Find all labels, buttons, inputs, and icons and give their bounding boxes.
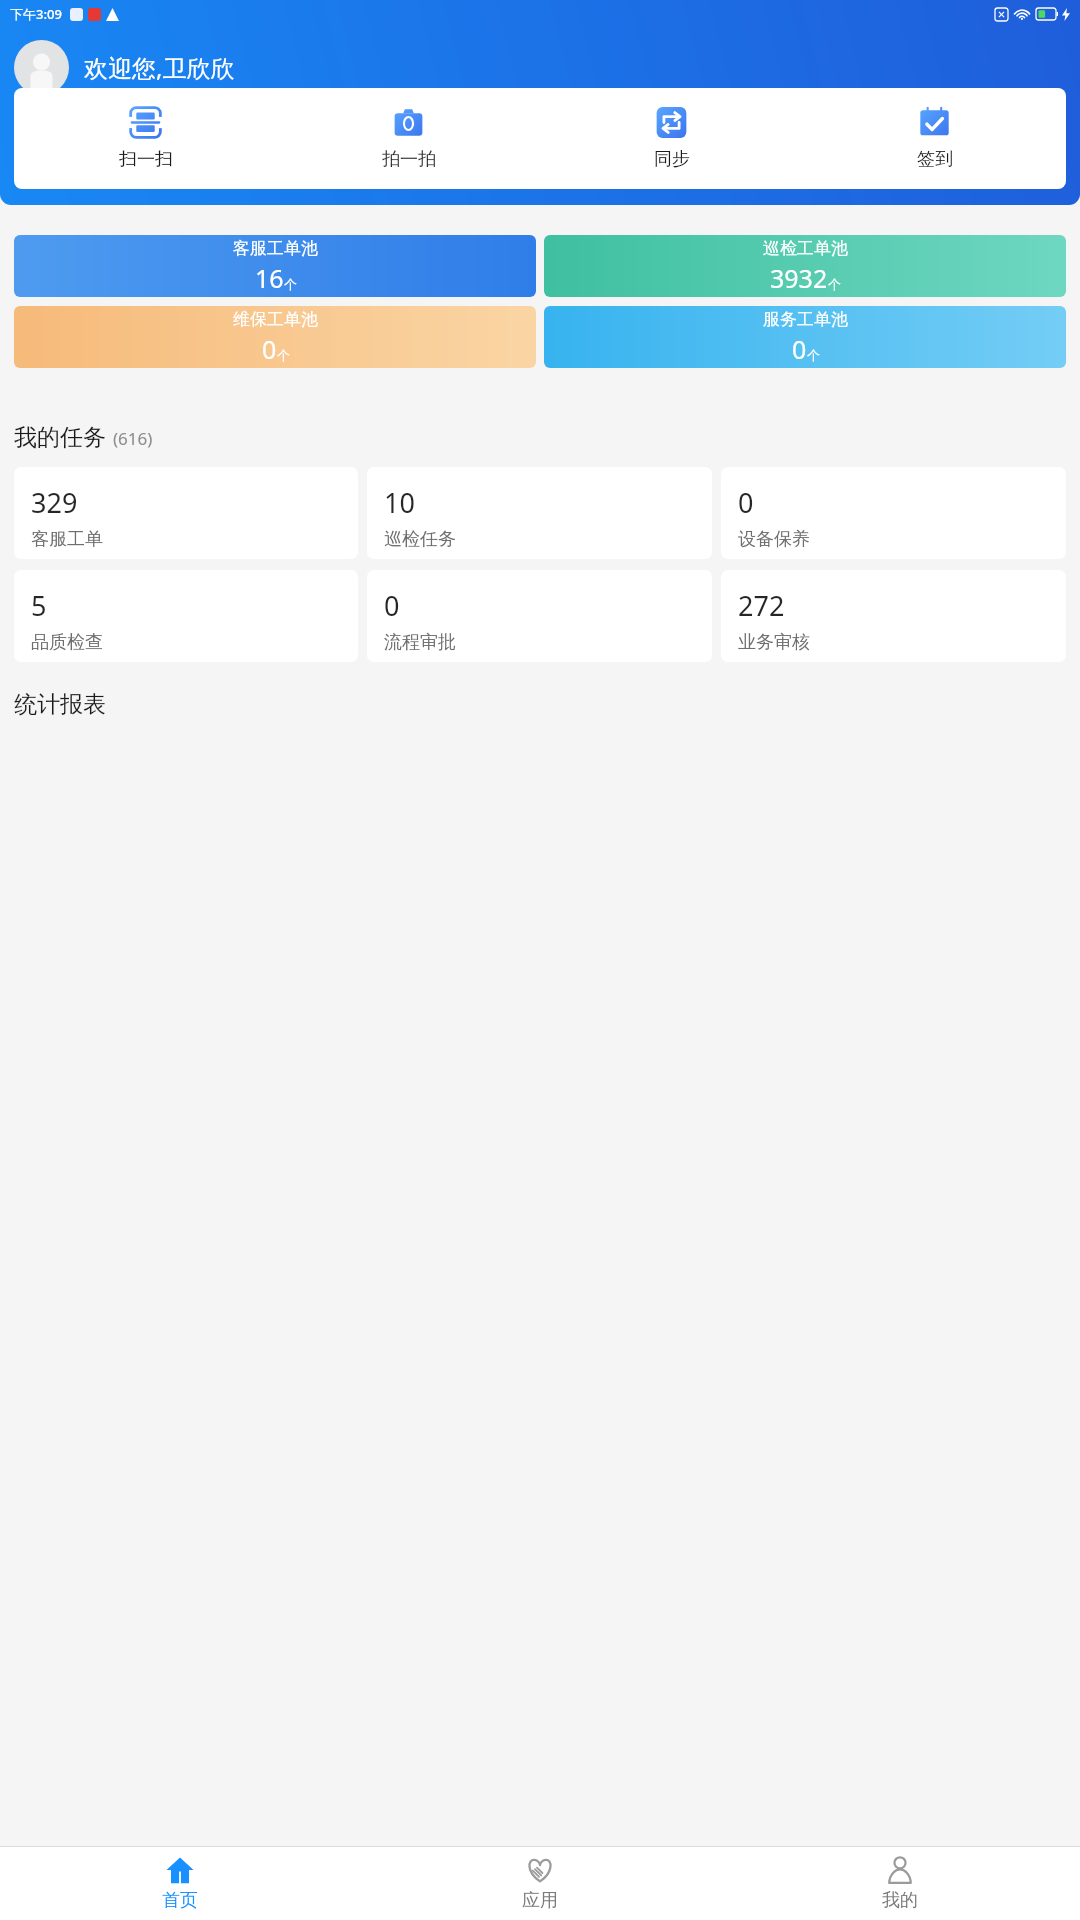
staticText: 272 bbox=[738, 587, 785, 624]
button[interactable]: 同步 bbox=[540, 88, 803, 189]
staticText: 5 bbox=[31, 587, 47, 624]
button[interactable]: 10 bbox=[367, 467, 712, 559]
button[interactable]: 0 bbox=[367, 570, 712, 662]
button[interactable]: 我的 bbox=[720, 1847, 1080, 1920]
staticText: 16 bbox=[255, 261, 284, 295]
button[interactable]: 首页 bbox=[0, 1847, 360, 1920]
button[interactable]: 维保工单池 bbox=[14, 306, 536, 368]
staticText: 设备保养 bbox=[738, 528, 810, 551]
staticText: 10 bbox=[384, 484, 415, 521]
button[interactable]: 0 bbox=[721, 467, 1066, 559]
staticText: 业务审核 bbox=[738, 631, 810, 654]
staticText: 我的任务 bbox=[14, 423, 106, 452]
staticText: 我的 bbox=[882, 1889, 918, 1912]
staticText: 个 bbox=[807, 347, 820, 363]
staticText: 0 bbox=[262, 332, 277, 366]
staticText: (616) bbox=[113, 427, 153, 450]
button[interactable]: 应用 bbox=[360, 1847, 720, 1920]
staticText: 统计报表 bbox=[14, 690, 106, 719]
staticText: 个 bbox=[284, 276, 297, 292]
button[interactable]: 扫一扫 bbox=[14, 88, 277, 189]
staticText: 0 bbox=[738, 484, 754, 521]
button[interactable]: 客服工单池 bbox=[14, 235, 536, 297]
button[interactable]: 服务工单池 bbox=[544, 306, 1066, 368]
staticText: 客服工单 bbox=[31, 528, 103, 551]
button[interactable]: 329 bbox=[14, 467, 358, 559]
button[interactable]: 巡检工单池 bbox=[544, 235, 1066, 297]
staticText: 首页 bbox=[162, 1889, 198, 1912]
button[interactable]: 5 bbox=[14, 570, 358, 662]
staticText: 个 bbox=[828, 276, 841, 292]
button[interactable]: 拍一拍 bbox=[277, 88, 540, 189]
staticText: 服务工单池 bbox=[763, 309, 848, 330]
button[interactable]: 签到 bbox=[803, 88, 1066, 189]
staticText: 下午3:09 bbox=[10, 5, 62, 23]
staticText: 0 bbox=[384, 587, 400, 624]
staticText: 品质检查 bbox=[31, 631, 103, 654]
staticText: 同步 bbox=[654, 148, 690, 171]
staticText: 应用 bbox=[522, 1889, 558, 1912]
staticText: 扫一扫 bbox=[119, 148, 173, 171]
staticText: 个 bbox=[277, 347, 290, 363]
staticText: 329 bbox=[31, 484, 78, 521]
staticText: 巡检任务 bbox=[384, 528, 456, 551]
staticText: 签到 bbox=[917, 148, 953, 171]
staticText: 维保工单池 bbox=[233, 309, 318, 330]
staticText: 流程审批 bbox=[384, 631, 456, 654]
staticText: 拍一拍 bbox=[382, 148, 436, 171]
staticText: 0 bbox=[792, 332, 807, 366]
button[interactable]: 272 bbox=[721, 570, 1066, 662]
staticText: 欢迎您,卫欣欣 bbox=[84, 51, 235, 84]
staticText: 3932 bbox=[770, 261, 828, 295]
staticText: 客服工单池 bbox=[233, 238, 318, 259]
staticText: 巡检工单池 bbox=[763, 238, 848, 259]
